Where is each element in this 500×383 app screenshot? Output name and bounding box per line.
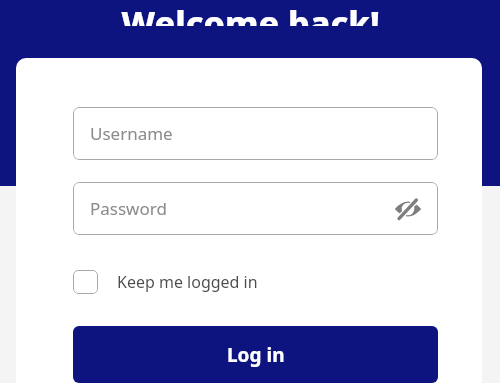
staticText: Keep me logged in bbox=[117, 271, 258, 293]
button[interactable]: Keep me logged in bbox=[73, 267, 258, 297]
staticText: Welcome back! bbox=[121, 0, 380, 26]
button[interactable]: Username bbox=[73, 107, 438, 160]
staticText: Password bbox=[90, 197, 167, 220]
button[interactable]: Show password bbox=[390, 191, 426, 227]
button[interactable]: Password bbox=[73, 182, 438, 235]
staticText: Username bbox=[90, 122, 173, 145]
button[interactable]: Log in bbox=[73, 326, 438, 383]
staticText: Log in bbox=[227, 342, 285, 368]
